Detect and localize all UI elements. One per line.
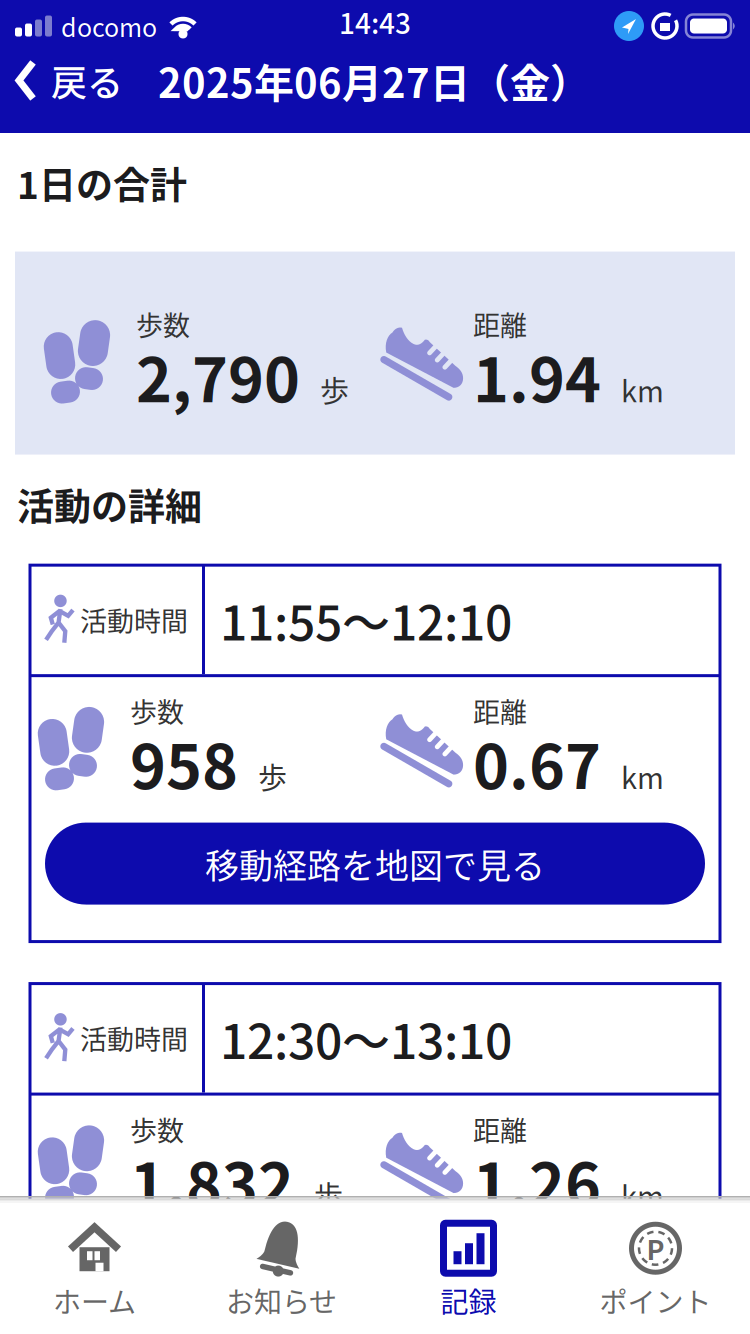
staticText: 1,832 [130, 1137, 294, 1225]
button[interactable]: 移動経路を地図で見る [45, 823, 705, 905]
staticText: 1.94 [473, 331, 601, 420]
staticText: 活動の詳細 [17, 478, 202, 531]
staticText: 2,790 [136, 331, 300, 420]
staticText: 1日の合計 [17, 156, 187, 210]
staticText: 活動時間 [80, 1018, 188, 1058]
staticText: 歩 [314, 1174, 343, 1216]
staticText: 歩数 [136, 304, 190, 343]
staticText: 記録 [440, 1280, 496, 1321]
staticText: 距離 [473, 1110, 527, 1149]
staticText: 移動経路を地図で見る [205, 1257, 545, 1307]
staticText: 歩 [320, 369, 349, 411]
staticText: 距離 [473, 691, 527, 730]
staticText: 1.26 [473, 1137, 601, 1225]
staticText: 歩数 [130, 1110, 184, 1149]
staticText: docomo [61, 8, 157, 44]
staticText: 14:43 [339, 2, 411, 42]
staticText: 12:30〜13:10 [220, 1003, 512, 1073]
staticText: 歩 [258, 755, 287, 797]
staticText: 0.67 [473, 718, 601, 806]
staticText: km [621, 1174, 664, 1216]
staticText: km [621, 369, 664, 411]
button[interactable]: 記録 [375, 1212, 562, 1330]
staticText: ポイント [599, 1280, 711, 1321]
button[interactable]: 戻る [0, 54, 123, 106]
staticText: お知らせ [226, 1280, 337, 1321]
staticText: P [646, 1229, 664, 1268]
staticText: 戻る [51, 54, 123, 106]
button[interactable]: 移動経路を地図で見る [45, 1241, 705, 1323]
staticText: ホーム [53, 1280, 136, 1321]
button[interactable]: お知らせ [188, 1212, 375, 1330]
staticText: 活動時間 [80, 600, 188, 639]
staticText: 958 [130, 718, 238, 806]
button[interactable]: ホーム [1, 1212, 188, 1330]
staticText: 距離 [473, 304, 527, 343]
staticText: km [621, 755, 664, 797]
staticText: 歩数 [130, 691, 184, 730]
staticText: 移動経路を地図で見る [205, 839, 545, 888]
button[interactable]: P [562, 1212, 749, 1330]
staticText: 2025年06月27日（金） [158, 51, 590, 109]
staticText: 11:55〜12:10 [220, 585, 512, 654]
